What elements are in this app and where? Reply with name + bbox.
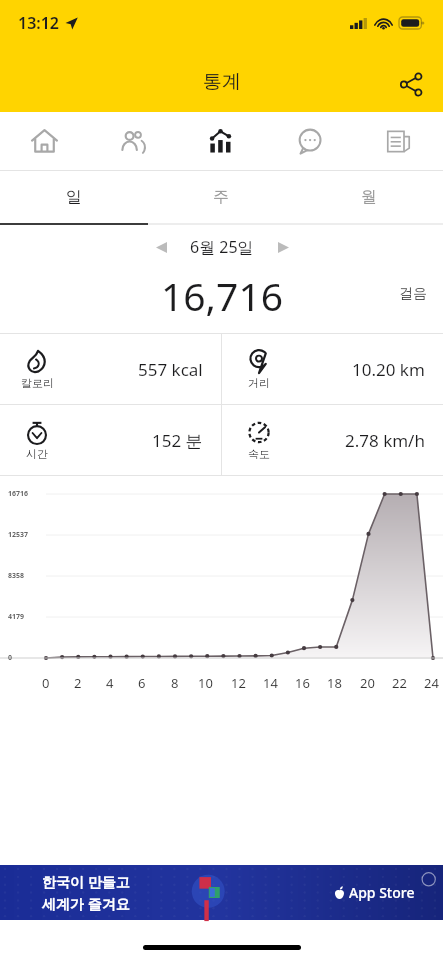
staticText: 24 — [424, 674, 439, 692]
staticText: 2 — [74, 674, 82, 692]
staticText: 10.20 km — [352, 358, 425, 381]
staticText: 4179 — [8, 612, 25, 622]
button[interactable]: Share — [387, 60, 435, 108]
button[interactable]: 속도 — [222, 405, 443, 475]
staticText: 152 분 — [152, 429, 203, 452]
staticText: 월 — [361, 187, 377, 207]
staticText: 14 — [263, 674, 278, 692]
staticText: App Store — [349, 883, 415, 902]
staticText: 6 — [138, 674, 146, 692]
button[interactable]: 월 — [295, 171, 443, 223]
staticText: 일 — [66, 187, 82, 207]
staticText: 22 — [392, 674, 407, 692]
staticText: 16716 — [8, 489, 29, 499]
staticText: 속도 — [248, 447, 270, 461]
button[interactable]: 거리 — [222, 334, 443, 404]
staticText: 13:12 — [18, 12, 60, 34]
staticText: 8 — [171, 674, 179, 692]
staticText: 16 — [295, 674, 310, 692]
staticText: 12537 — [8, 530, 29, 540]
button[interactable]: News — [354, 112, 443, 170]
button[interactable]: 일 — [0, 171, 147, 223]
staticText: 6월 25일 — [190, 236, 254, 258]
staticText: 주 — [213, 187, 229, 207]
staticText: 2.78 km/h — [345, 429, 425, 452]
staticText: 한국이 만들고 — [42, 872, 130, 891]
staticText: 12 — [231, 674, 246, 692]
button[interactable]: Previous day — [144, 230, 178, 264]
staticText: 10 — [198, 674, 213, 692]
button[interactable]: Statistics — [176, 112, 265, 170]
button[interactable]: 주 — [147, 171, 295, 223]
staticText: 4 — [106, 674, 114, 692]
staticText: 시간 — [26, 447, 48, 461]
staticText: 18 — [327, 674, 342, 692]
staticText: 20 — [360, 674, 375, 692]
staticText: 8358 — [8, 571, 25, 581]
button[interactable]: Messages — [265, 112, 354, 170]
button[interactable]: Friends — [88, 112, 176, 170]
staticText: 557 kcal — [138, 358, 203, 381]
button[interactable]: Next day — [266, 230, 300, 264]
staticText: 걸음 — [399, 285, 427, 303]
staticText: 세계가 즐겨요 — [42, 894, 130, 913]
button[interactable]: Advertisement — [0, 865, 443, 920]
staticText: 통계 — [203, 70, 241, 94]
staticText: 16,716 — [161, 269, 283, 319]
button[interactable]: 시간 — [0, 405, 221, 475]
staticText: 칼로리 — [21, 376, 54, 390]
staticText: 0 — [8, 653, 13, 663]
button[interactable]: Home — [0, 112, 88, 170]
button[interactable]: 칼로리 — [0, 334, 221, 404]
staticText: 거리 — [248, 376, 270, 390]
staticText: 0 — [42, 674, 50, 692]
